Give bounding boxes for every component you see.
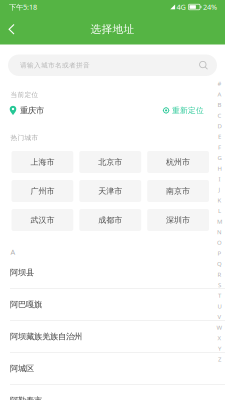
staticText: P	[217, 249, 221, 257]
button[interactable]: V	[214, 311, 225, 322]
button[interactable]: Y	[214, 343, 225, 354]
staticText: T	[218, 291, 221, 300]
staticText: A	[217, 90, 221, 98]
staticText: 下午5:18	[9, 2, 37, 12]
button[interactable]: J	[214, 184, 225, 195]
button[interactable]: 深圳市	[147, 209, 209, 231]
staticText: 南京市	[166, 186, 190, 196]
button[interactable]: Back	[0, 14, 30, 44]
staticText: B	[217, 101, 221, 109]
staticText: 武汉市	[30, 215, 54, 225]
staticText: A	[10, 247, 15, 257]
button[interactable]: U	[214, 301, 225, 311]
staticText: 成都市	[98, 215, 122, 225]
staticText: 上海市	[30, 157, 54, 167]
button[interactable]: B	[214, 99, 225, 110]
button[interactable]: 上海市	[11, 151, 73, 173]
staticText: H	[217, 164, 221, 172]
button[interactable]: P	[214, 248, 225, 258]
button[interactable]: Z	[214, 354, 225, 364]
staticText: 阿巴嘎旗	[10, 299, 42, 310]
button[interactable]: L	[214, 205, 225, 216]
button[interactable]: N	[214, 227, 225, 237]
button[interactable]: 广州市	[11, 180, 73, 202]
staticText: 阿坝藏族羌族自治州	[10, 331, 82, 342]
staticText: L	[218, 207, 221, 215]
button[interactable]: W	[214, 322, 225, 333]
button[interactable]: R	[214, 269, 225, 280]
staticText: K	[217, 196, 221, 204]
button[interactable]: 南京市	[147, 180, 209, 202]
button[interactable]: S	[214, 280, 225, 290]
button[interactable]: K	[214, 195, 225, 205]
button[interactable]: I	[214, 174, 225, 184]
staticText: R	[217, 270, 221, 278]
staticText: S	[218, 281, 221, 289]
staticText: Q	[217, 260, 222, 268]
staticText: 深圳市	[166, 215, 190, 225]
staticText: 阿城区	[10, 363, 34, 374]
button[interactable]: O	[214, 237, 225, 248]
staticText: 选择地址	[90, 22, 134, 36]
button[interactable]: E	[214, 131, 225, 142]
staticText: 24%	[203, 2, 217, 12]
button[interactable]: F	[214, 142, 225, 152]
staticText: N	[217, 228, 222, 236]
staticText: U	[217, 302, 221, 310]
staticText: F	[218, 143, 221, 151]
staticText: V	[217, 313, 221, 321]
button[interactable]: 重新定位	[163, 104, 204, 116]
button[interactable]: 成都市	[79, 209, 141, 231]
button[interactable]: #	[214, 78, 225, 89]
staticText: 广州市	[30, 186, 54, 196]
staticText: 当前定位	[10, 90, 38, 99]
button[interactable]: T	[214, 290, 225, 301]
staticText: W	[216, 323, 222, 331]
staticText: J	[218, 185, 220, 194]
button[interactable]: 阿巴嘎旗	[0, 289, 225, 320]
button[interactable]: M	[214, 216, 225, 227]
staticText: #	[217, 79, 221, 88]
staticText: Z	[218, 355, 221, 363]
button[interactable]: G	[214, 152, 225, 163]
staticText: 热门城市	[10, 133, 38, 142]
staticText: 重新定位	[172, 105, 204, 115]
button[interactable]: X	[214, 333, 225, 343]
button[interactable]: C	[214, 110, 225, 121]
staticText: 请输入城市名或者拼音	[20, 61, 90, 69]
staticText: D	[217, 122, 221, 130]
staticText: I	[218, 175, 220, 183]
button[interactable]: H	[214, 163, 225, 174]
staticText: 4G	[176, 2, 185, 12]
staticText: C	[217, 111, 221, 119]
staticText: Y	[218, 344, 221, 353]
button[interactable]: D	[214, 121, 225, 131]
button[interactable]: 阿坝藏族羌族自治州	[0, 321, 225, 352]
staticText: 阿勒泰市	[10, 395, 42, 400]
button[interactable]: Q	[214, 258, 225, 269]
staticText: 阿坝县	[10, 267, 34, 278]
staticText: 北京市	[98, 157, 122, 167]
staticText: 重庆市	[20, 105, 44, 116]
staticText: G	[217, 154, 221, 162]
staticText: O	[217, 238, 222, 247]
staticText: 天津市	[98, 186, 122, 196]
staticText: 杭州市	[166, 157, 190, 167]
button[interactable]: 天津市	[79, 180, 141, 202]
button[interactable]: 北京市	[79, 151, 141, 173]
button[interactable]: 杭州市	[147, 151, 209, 173]
button[interactable]: 武汉市	[11, 209, 73, 231]
button[interactable]: A	[214, 89, 225, 99]
staticText: E	[218, 132, 221, 141]
button[interactable]: 阿坝县	[0, 257, 225, 288]
button[interactable]: 阿勒泰市	[0, 385, 225, 400]
staticText: M	[217, 217, 222, 225]
button[interactable]: 阿城区	[0, 353, 225, 384]
staticText: X	[217, 334, 221, 342]
